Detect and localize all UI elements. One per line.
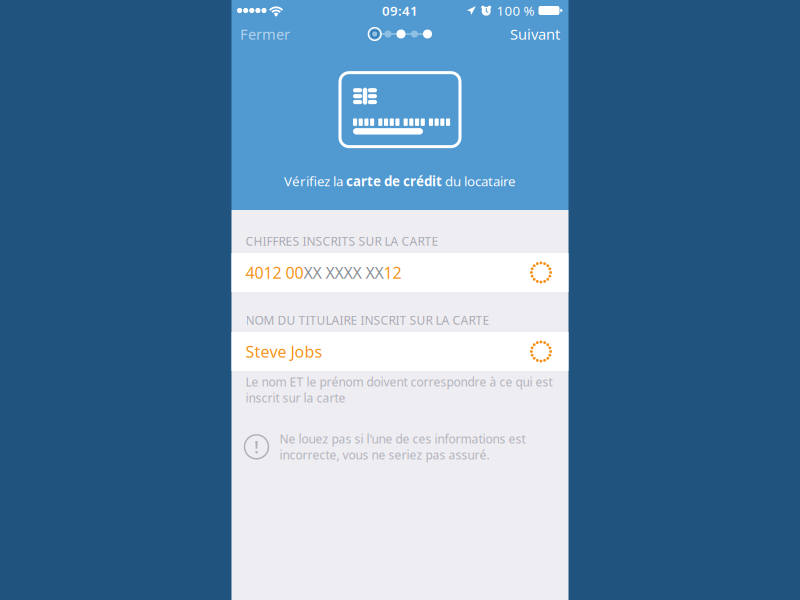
staticText: 12 [383,262,401,283]
staticText: Vérifiez la [284,172,346,190]
staticText: 09:41 [382,2,418,19]
staticText: CHIFFRES INSCRITS SUR LA CARTE [245,233,438,249]
staticText: Steve Jobs [245,341,322,362]
staticText: du locataire [442,172,516,190]
staticText: 100 % [496,2,534,19]
staticText: Fermer [240,24,290,44]
staticText: Ne louez pas si l'une de ces information… [279,431,525,463]
staticText: 4012 00 [245,262,303,283]
button[interactable]: Fermer [232,21,298,47]
button[interactable]: Suivant [502,21,568,47]
staticText: Suivant [510,24,560,44]
staticText: Le nom ET le prénom doivent correspondre… [245,374,552,406]
staticText: XX XXXX XX [303,262,383,283]
staticText: carte de crédit [346,172,442,190]
button[interactable]: Steve Jobs [231,332,568,371]
staticText: NOM DU TITULAIRE INSCRIT SUR LA CARTE [245,312,489,328]
button[interactable]: 4012 00 [231,253,568,292]
